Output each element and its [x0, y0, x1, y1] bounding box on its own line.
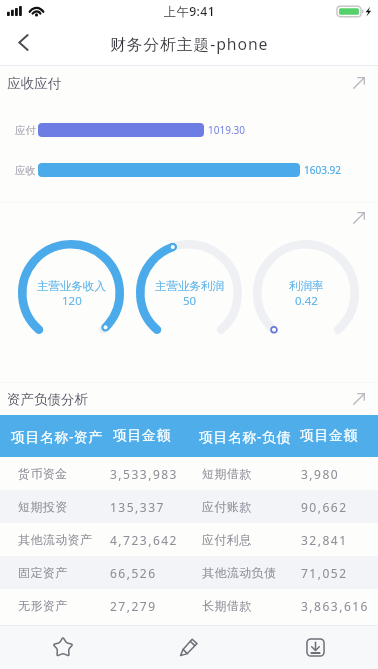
staticText: 1603.92: [304, 163, 341, 177]
staticText: 90,662: [301, 499, 348, 515]
staticText: 135,337: [110, 499, 165, 515]
staticText: 项目名称-负债: [199, 427, 292, 446]
staticText: 应付利息: [202, 532, 252, 547]
staticText: 1019.30: [208, 123, 245, 137]
button[interactable]: Edit: [126, 625, 252, 669]
staticText: 项目金额: [300, 427, 358, 445]
staticText: 项目名称-资产: [11, 427, 104, 446]
staticText: 应付: [15, 124, 36, 137]
staticText: 3,980: [301, 466, 340, 482]
staticText: 短期借款: [202, 466, 252, 481]
button[interactable]: Back: [5, 24, 42, 61]
staticText: 50: [183, 293, 197, 309]
staticText: 项目金额: [113, 427, 171, 445]
staticText: 120: [62, 293, 82, 309]
staticText: 3,863,616: [301, 598, 369, 614]
staticText: 其他流动负债: [202, 565, 277, 580]
button[interactable]: Expand: [346, 70, 372, 96]
staticText: 4,723,642: [110, 532, 178, 548]
button[interactable]: 其他流动资产: [0, 523, 378, 556]
staticText: 其他流动资产: [18, 532, 93, 547]
staticText: 利润率: [289, 279, 324, 293]
button[interactable]: Download: [252, 625, 378, 669]
button[interactable]: 短期投资: [0, 490, 378, 523]
staticText: 应收: [15, 164, 36, 177]
button[interactable]: 货币资金: [0, 457, 378, 490]
button[interactable]: Favorite: [0, 625, 126, 669]
button[interactable]: Expand: [346, 205, 372, 231]
staticText: 短期投资: [18, 499, 68, 514]
staticText: 27,279: [110, 598, 157, 614]
staticText: 主营业务收入: [37, 279, 106, 293]
staticText: 66,526: [110, 565, 157, 581]
staticText: 固定资产: [18, 565, 68, 580]
staticText: 主营业务利润: [155, 279, 224, 293]
button[interactable]: Expand: [346, 386, 372, 412]
staticText: 0.42: [295, 293, 318, 309]
button[interactable]: 无形资产: [0, 589, 378, 622]
staticText: 71,052: [301, 565, 348, 581]
staticText: 应付账款: [202, 499, 252, 514]
staticText: 财务分析主题-phone: [110, 33, 269, 55]
staticText: 无形资产: [18, 598, 68, 613]
staticText: 32,841: [301, 532, 348, 548]
staticText: 长期借款: [202, 598, 252, 613]
staticText: 应收应付: [7, 75, 61, 92]
staticText: 3,533,983: [110, 466, 178, 482]
staticText: 资产负债分析: [7, 391, 88, 408]
button[interactable]: 固定资产: [0, 556, 378, 589]
staticText: 上午9:41: [164, 3, 216, 20]
staticText: 货币资金: [18, 466, 68, 481]
